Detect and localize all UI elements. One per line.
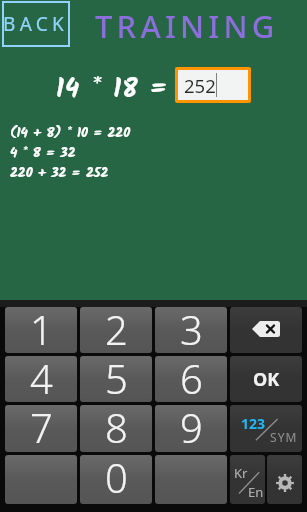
staticText: En — [248, 483, 264, 501]
staticText: 14 * 18 = — [56, 69, 169, 110]
staticText: 252 — [184, 73, 216, 98]
button[interactable]: 8 — [80, 405, 152, 452]
staticText: 4 * 8 = 32 — [10, 143, 76, 163]
button[interactable]: 9 — [155, 405, 227, 452]
button[interactable]: Backspace — [230, 307, 302, 353]
button[interactable] — [155, 455, 227, 504]
staticText: 5 — [105, 356, 128, 397]
staticText: 7 — [30, 405, 53, 447]
staticText: OK — [253, 367, 280, 392]
button[interactable]: OK — [230, 356, 302, 402]
button[interactable]: 1 — [5, 307, 77, 353]
staticText: SYM — [270, 429, 298, 445]
staticText: 8 — [105, 405, 128, 447]
button[interactable]: 3 — [155, 307, 227, 353]
button[interactable]: 4 — [5, 356, 77, 402]
staticText: 1 — [30, 307, 53, 348]
staticText: BACK — [3, 11, 69, 37]
button[interactable] — [5, 455, 77, 504]
staticText: 220 + 32 = 252 — [10, 163, 109, 183]
button[interactable]: Symbols — [230, 405, 302, 452]
button[interactable]: 6 — [155, 356, 227, 402]
button[interactable]: 5 — [80, 356, 152, 402]
staticText: Kr — [234, 464, 248, 482]
button[interactable]: 2 — [80, 307, 152, 353]
staticText: 0 — [105, 455, 128, 499]
button[interactable]: BACK — [2, 1, 70, 47]
staticText: TRAINING — [95, 5, 279, 47]
button[interactable]: 7 — [5, 405, 77, 452]
staticText: 6 — [180, 356, 203, 397]
staticText: 3 — [180, 307, 203, 348]
button[interactable]: Language — [230, 455, 265, 504]
staticText: 2 — [105, 307, 128, 348]
staticText: 4 — [30, 356, 53, 397]
button[interactable]: Settings — [267, 455, 302, 504]
button[interactable]: 252 — [178, 70, 248, 100]
staticText: (14 + 8) * 10 = 220 — [10, 123, 131, 143]
staticText: 9 — [180, 405, 203, 447]
button[interactable]: 0 — [80, 455, 152, 504]
staticText: 123 — [241, 414, 266, 433]
